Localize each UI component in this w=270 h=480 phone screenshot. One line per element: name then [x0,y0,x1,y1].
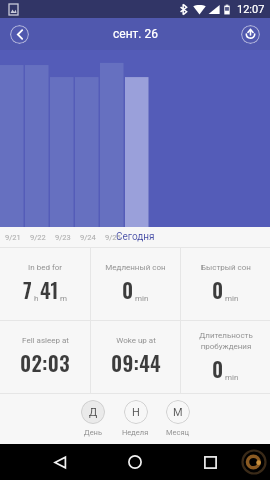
staticText: min [135,294,149,303]
staticText: Длительность пробуждения [199,331,253,351]
staticText: 9/22 [30,233,46,242]
button[interactable]: Медленный сон [91,248,180,320]
button[interactable]: Fell asleep at [0,321,90,393]
staticText: 09:44 [111,348,161,378]
staticText: 12:07 [237,3,265,16]
button[interactable]: Длительность пробуждения [181,321,270,393]
staticText: m [60,294,68,303]
staticText: 9/24 [80,233,96,242]
button[interactable]: Woke up at [91,321,180,393]
staticText: min [225,373,239,382]
button[interactable]: Н [122,394,149,437]
staticText: сент. 26 [113,27,158,41]
button[interactable]: Back [45,447,75,477]
button[interactable]: Share [241,25,260,44]
staticText: Fell asleep at [22,336,69,345]
staticText: h [34,294,39,303]
button[interactable]: Быстрый сон [181,248,270,320]
staticText: Сегодня [116,231,155,243]
button[interactable]: Home [120,447,150,477]
staticText: 7 [23,275,33,305]
staticText: 0 [212,275,224,305]
staticText: Н [132,406,140,419]
button[interactable]: Д [81,394,105,437]
staticText: 9/23 [55,233,71,242]
staticText: День [84,428,103,437]
staticText: 9/25 [105,233,121,242]
staticText: Неделя [122,428,149,437]
staticText: Медленный сон [105,263,166,272]
staticText: 9/21 [5,233,21,242]
staticText: М [173,406,183,419]
staticText: 41 [40,275,59,305]
staticText: In bed for [28,263,62,272]
button[interactable]: Back [10,25,29,44]
staticText: Woke up at [116,336,156,345]
button[interactable]: In bed for [0,248,90,320]
staticText: 02:03 [20,348,70,378]
staticText: Месяц [166,428,190,437]
staticText: 0 [212,354,224,384]
button[interactable]: Recents [195,447,225,477]
staticText: 0 [122,275,134,305]
staticText: Быстрый сон [201,263,251,272]
staticText: Д [89,406,98,419]
staticText: min [225,294,239,303]
button[interactable]: М [166,394,190,437]
